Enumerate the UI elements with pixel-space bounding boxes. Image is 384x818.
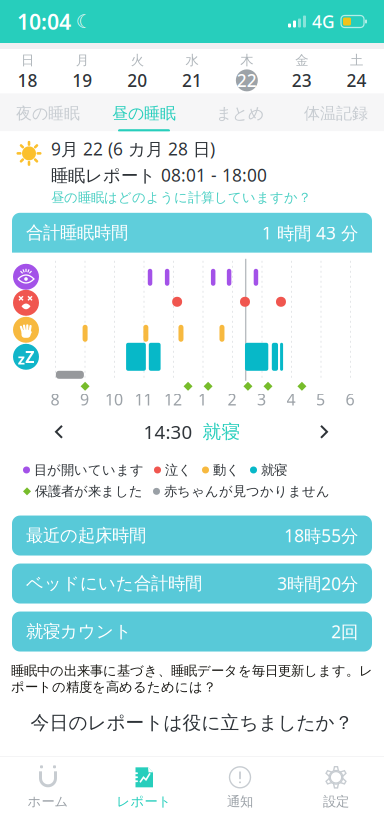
staticText: 火: [131, 52, 144, 68]
staticText: 2: [227, 389, 236, 410]
staticText: 14:30: [143, 419, 192, 444]
button[interactable]: 設定: [288, 757, 384, 818]
staticText: 9: [80, 389, 89, 410]
staticText: 21: [182, 69, 202, 92]
button[interactable]: 木: [219, 49, 274, 93]
staticText: 4G: [312, 10, 335, 33]
staticText: 19: [72, 69, 92, 92]
staticText: 合計睡眠時間: [26, 222, 128, 243]
staticText: 通知: [227, 793, 253, 810]
staticText: 目が開いています: [34, 462, 144, 478]
staticText: 11: [134, 389, 152, 410]
staticText: ☾: [76, 11, 93, 32]
staticText: 土: [350, 52, 363, 68]
staticText: まとめ: [216, 104, 264, 123]
staticText: 日: [21, 52, 34, 68]
staticText: 18: [17, 69, 37, 92]
button[interactable]: まとめ: [192, 93, 288, 132]
button[interactable]: 次へ: [303, 417, 346, 447]
staticText: レポート: [116, 793, 171, 810]
staticText: 10: [105, 389, 123, 410]
staticText: 12: [164, 389, 182, 410]
staticText: 23: [292, 69, 312, 92]
staticText: 金: [295, 52, 308, 68]
button[interactable]: 日: [0, 49, 55, 93]
button[interactable]: 体温記録: [288, 93, 384, 132]
button[interactable]: 月: [55, 49, 110, 93]
staticText: 6: [345, 389, 354, 410]
staticText: 泣く: [165, 462, 192, 478]
button[interactable]: 昼の睡眠はどのように計算していますか？: [51, 189, 311, 206]
staticText: 夜の睡眠: [16, 104, 80, 123]
staticText: 3: [257, 389, 266, 410]
staticText: z: [18, 349, 25, 369]
staticText: ホーム: [27, 793, 68, 810]
button[interactable]: 最近の起床時間: [0, 507, 384, 555]
staticText: 就寝カウント: [26, 621, 132, 642]
staticText: 昼の睡眠: [112, 104, 176, 123]
staticText: Z: [25, 346, 34, 367]
button[interactable]: ホーム: [0, 757, 96, 818]
staticText: 3時間20分: [277, 572, 358, 595]
staticText: 10:04: [17, 7, 71, 36]
button[interactable]: 金: [274, 49, 329, 93]
staticText: 月: [76, 52, 89, 68]
staticText: 赤ちゃんが見つかりません: [164, 483, 330, 500]
staticText: 就寝: [202, 420, 240, 443]
staticText: ベッドにいた合計時間: [26, 573, 202, 594]
staticText: 保護者が来ました: [35, 483, 143, 500]
button[interactable]: 就寝カウント: [0, 603, 384, 651]
button[interactable]: 前へ: [38, 417, 81, 447]
staticText: 水: [185, 52, 198, 68]
staticText: 最近の起床時間: [26, 525, 146, 546]
staticText: 18時55分: [284, 524, 358, 547]
staticText: 20: [127, 69, 147, 92]
staticText: 22: [237, 69, 257, 92]
button[interactable]: 昼の睡眠: [96, 93, 192, 132]
staticText: 1: [198, 389, 207, 410]
button[interactable]: ベッドにいた合計時間: [0, 555, 384, 603]
staticText: 1 時間 43 分: [262, 221, 358, 244]
button[interactable]: レポート: [96, 757, 192, 818]
staticText: 設定: [323, 793, 349, 810]
staticText: 睡眠中の出来事に基づき、睡眠データを毎日更新します。レポートの精度を高めるために…: [11, 662, 373, 695]
button[interactable]: 通知: [192, 757, 288, 818]
button[interactable]: 火: [110, 49, 165, 93]
staticText: 24: [347, 69, 367, 92]
staticText: 今日のレポートは役に立ちましたか？: [30, 711, 353, 734]
staticText: 4: [286, 389, 295, 410]
button[interactable]: 水: [165, 49, 219, 93]
staticText: 8: [50, 389, 59, 410]
staticText: 木: [240, 52, 253, 68]
staticText: 5: [316, 389, 325, 410]
staticText: 動く: [213, 462, 240, 478]
staticText: 睡眠レポート 08:01 - 18:00: [51, 163, 267, 186]
staticText: 就寝: [261, 462, 287, 478]
staticText: 体温記録: [304, 104, 368, 123]
button[interactable]: 夜の睡眠: [0, 93, 96, 132]
staticText: 2回: [331, 620, 358, 643]
staticText: 昼の睡眠はどのように計算していますか？: [51, 189, 311, 206]
button[interactable]: 土: [329, 49, 384, 93]
staticText: 9月 22 (6 カ月 28 日): [51, 137, 215, 160]
